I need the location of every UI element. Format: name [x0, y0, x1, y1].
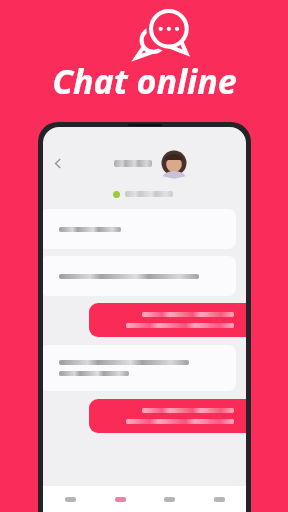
- button[interactable]: Profile: [206, 489, 232, 509]
- button[interactable]: [43, 209, 236, 249]
- button[interactable]: Chats: [107, 489, 133, 509]
- staticText: Chat online: [52, 58, 237, 104]
- button[interactable]: [89, 303, 246, 337]
- button[interactable]: Home: [57, 489, 83, 509]
- button[interactable]: [43, 256, 236, 296]
- button[interactable]: [89, 399, 246, 433]
- button[interactable]: Back: [48, 153, 68, 173]
- button[interactable]: [43, 345, 236, 391]
- button[interactable]: Search: [156, 489, 182, 509]
